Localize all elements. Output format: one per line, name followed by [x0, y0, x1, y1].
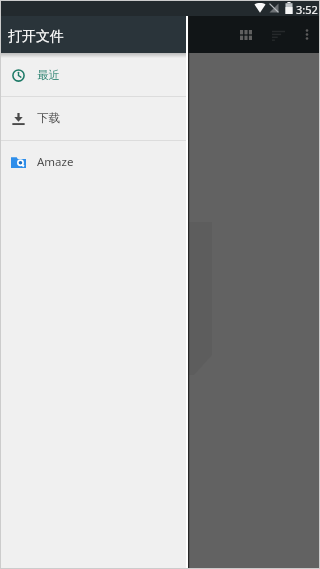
button[interactable]: Sort — [262, 18, 295, 51]
button[interactable]: 下载 — [0, 97, 188, 140]
staticText: 打开文件 — [8, 28, 64, 46]
staticText: 最近 — [37, 68, 60, 82]
staticText: Amaze — [37, 154, 74, 170]
staticText: 下载 — [37, 111, 60, 125]
button[interactable]: 最近 — [0, 53, 188, 96]
staticText: 3:52 — [296, 2, 318, 17]
button[interactable]: More options — [290, 18, 320, 51]
button[interactable]: Grid view — [229, 18, 262, 51]
button[interactable]: Amaze — [0, 141, 188, 184]
